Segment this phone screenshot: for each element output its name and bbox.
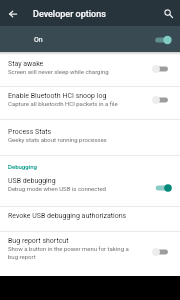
staticText: USB debugging	[8, 177, 56, 185]
button[interactable]: Bug report shortcut toggle	[152, 245, 178, 259]
staticText: Stay awake	[8, 60, 44, 68]
staticText: Debugging	[8, 163, 37, 170]
staticText: On	[34, 36, 43, 44]
button[interactable]: On	[0, 26, 180, 52]
staticText: Screen will never sleep while charging	[8, 68, 109, 75]
staticText: Capture all bluetooth HCI packets in a f…	[8, 100, 118, 107]
button[interactable]: Search	[158, 3, 178, 23]
button[interactable]: Navigate up	[3, 4, 23, 24]
button[interactable]: Enable Bluetooth HCI snoop log toggle	[152, 93, 178, 107]
staticText: Enable Bluetooth HCI snoop log	[8, 92, 107, 100]
staticText: Debug mode when USB is connected	[8, 185, 106, 192]
staticText: Bug report shortcut	[8, 237, 69, 245]
button[interactable]: USB debugging toggle	[152, 181, 178, 195]
button[interactable]: Debugging	[8, 163, 37, 170]
staticText: Process Stats	[8, 128, 52, 136]
staticText: Show a button in the power menu for taki…	[8, 245, 135, 261]
staticText: Geeky stats about running processes	[8, 136, 107, 143]
button[interactable]: Stay awake toggle	[152, 62, 178, 76]
staticText: Revoke USB debugging authorizations	[8, 212, 127, 220]
staticText: Developer options	[33, 9, 106, 20]
